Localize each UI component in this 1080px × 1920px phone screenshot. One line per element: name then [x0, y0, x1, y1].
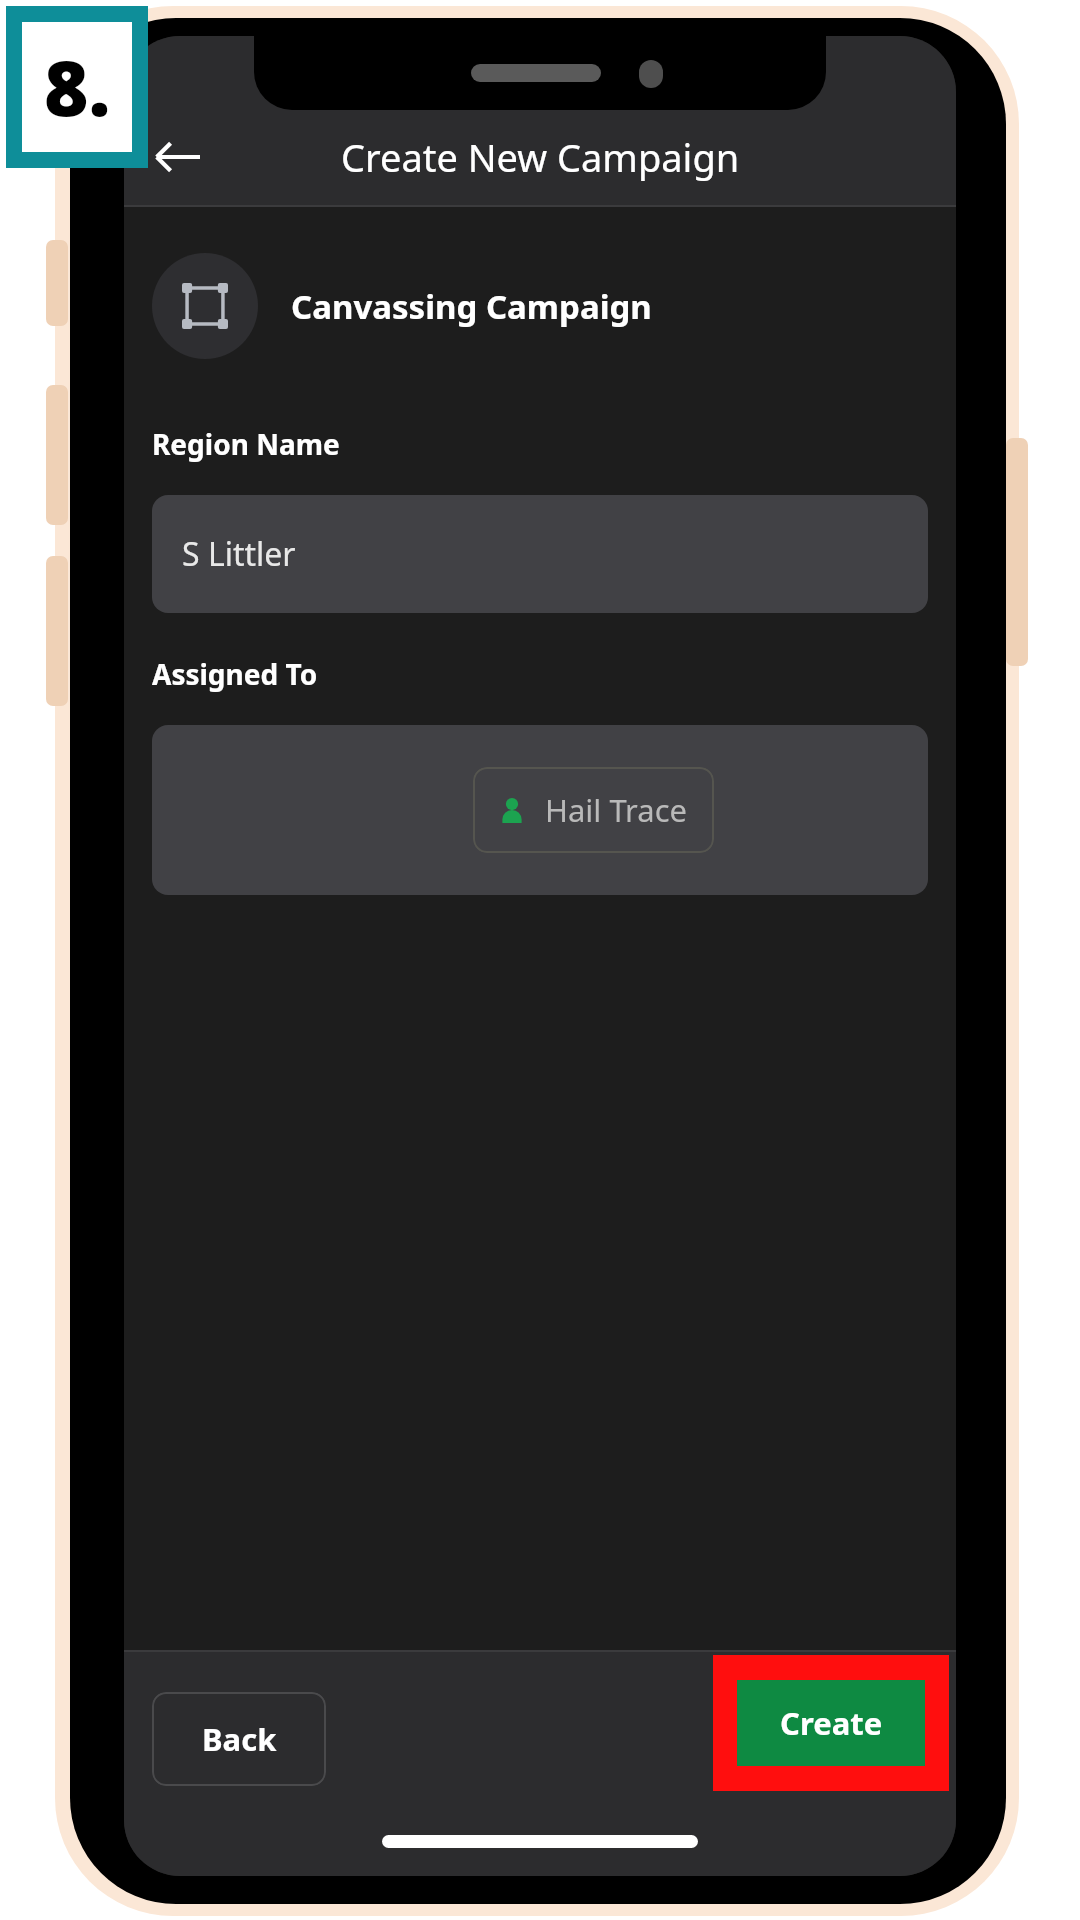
staticText: Back [202, 1718, 277, 1760]
staticText: 8. [44, 35, 111, 139]
button[interactable]: Back [134, 114, 220, 200]
button[interactable]: Create [737, 1680, 925, 1766]
staticText: S Littler [182, 532, 296, 576]
staticText: Region Name [152, 425, 340, 463]
button[interactable]: Hail Trace [473, 767, 714, 853]
staticText: Assigned To [152, 655, 318, 693]
button[interactable]: S Littler [152, 495, 928, 613]
staticText: Hail Trace [545, 789, 688, 831]
staticText: Create New Campaign [341, 131, 740, 183]
staticText: Canvassing Campaign [291, 284, 652, 329]
staticText: Create [780, 1702, 883, 1744]
button[interactable]: Back [152, 1692, 326, 1786]
